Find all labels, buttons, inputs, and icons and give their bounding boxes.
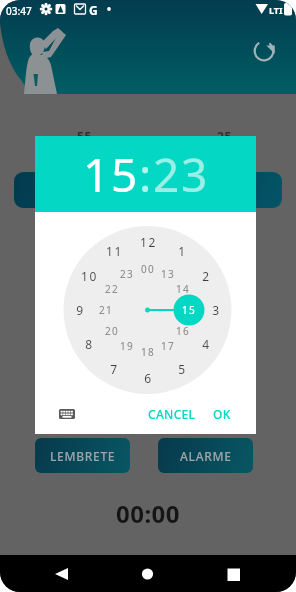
staticText: 00:00 [0,497,296,530]
button[interactable]: Switch to keyboard input [51,398,83,430]
button[interactable]: OK [213,406,231,422]
staticText: LTI [269,4,283,16]
staticText: 10 [81,268,98,284]
staticText: 00 [141,262,155,276]
button[interactable]: Reset [246,33,282,69]
staticText: 3 [212,302,221,318]
staticText: 20 [105,324,119,338]
staticText: 12 [140,234,157,250]
staticText: 55 [77,128,92,144]
button[interactable]: 15 [83,143,139,206]
button[interactable]: Recent apps [215,555,252,592]
button[interactable] [14,172,144,208]
staticText: 03:47 [6,4,32,18]
staticText: 15 [182,303,196,317]
staticText: 17 [161,339,175,353]
staticText: 13 [161,267,175,281]
staticText: 6 [144,370,153,386]
button[interactable]: LEMBRETE [35,438,130,473]
button[interactable]: ALARME [158,438,253,473]
button[interactable] [152,172,282,208]
staticText: 23 [120,267,134,281]
staticText: 8 [85,336,94,352]
button[interactable]: 23 [153,143,209,206]
staticText: 9 [76,302,85,318]
staticText: 16 [176,324,190,338]
staticText: : [139,143,153,206]
staticText: 11 [106,243,123,259]
button[interactable]: CANCEL [148,406,196,422]
staticText: ALARME [180,448,232,464]
staticText: 7 [110,361,119,377]
button[interactable]: Back [43,555,80,592]
staticText: 5 [178,361,187,377]
staticText: 2 [202,268,211,284]
staticText: 25 [217,128,232,144]
staticText: 22 [105,282,119,296]
staticText: 4 [202,336,211,352]
staticText: 21 [99,303,113,317]
staticText: 14 [176,282,190,296]
staticText: LEMBRETE [50,448,116,464]
staticText: 1 [178,243,187,259]
staticText: 18 [141,345,155,359]
button[interactable]: Home [129,555,166,592]
staticText: 19 [120,339,134,353]
staticText: G [89,2,98,18]
